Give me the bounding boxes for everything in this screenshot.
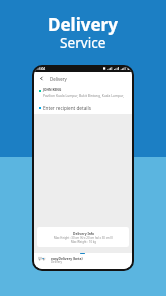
button[interactable]: JOHN KENG xyxy=(34,85,132,97)
staticText: 15:04 xyxy=(37,67,46,71)
staticText: Service xyxy=(60,33,106,52)
button[interactable]: Enter recipient details xyxy=(34,85,132,111)
staticText: Enter recipient details xyxy=(43,105,91,111)
staticText: Max Weight : 10 kg xyxy=(71,240,96,244)
staticText: Delivery xyxy=(51,260,62,264)
staticText: Delivery xyxy=(50,76,67,82)
staticText: JOHN KENG xyxy=(43,88,62,92)
button[interactable]: easyDelivery (beta) xyxy=(34,253,132,269)
staticText: Delivery xyxy=(48,13,118,36)
staticText: easyDelivery (beta) xyxy=(51,256,83,260)
staticText: Max Height : 30 cm (h) x 20 cm (w) x 30 … xyxy=(54,236,113,240)
button[interactable]: Back xyxy=(37,74,46,83)
staticText: Pavilion Kuala Lumpur, Bukit Bintang, Ku… xyxy=(43,93,129,97)
staticText: Delivery Info xyxy=(73,231,95,235)
